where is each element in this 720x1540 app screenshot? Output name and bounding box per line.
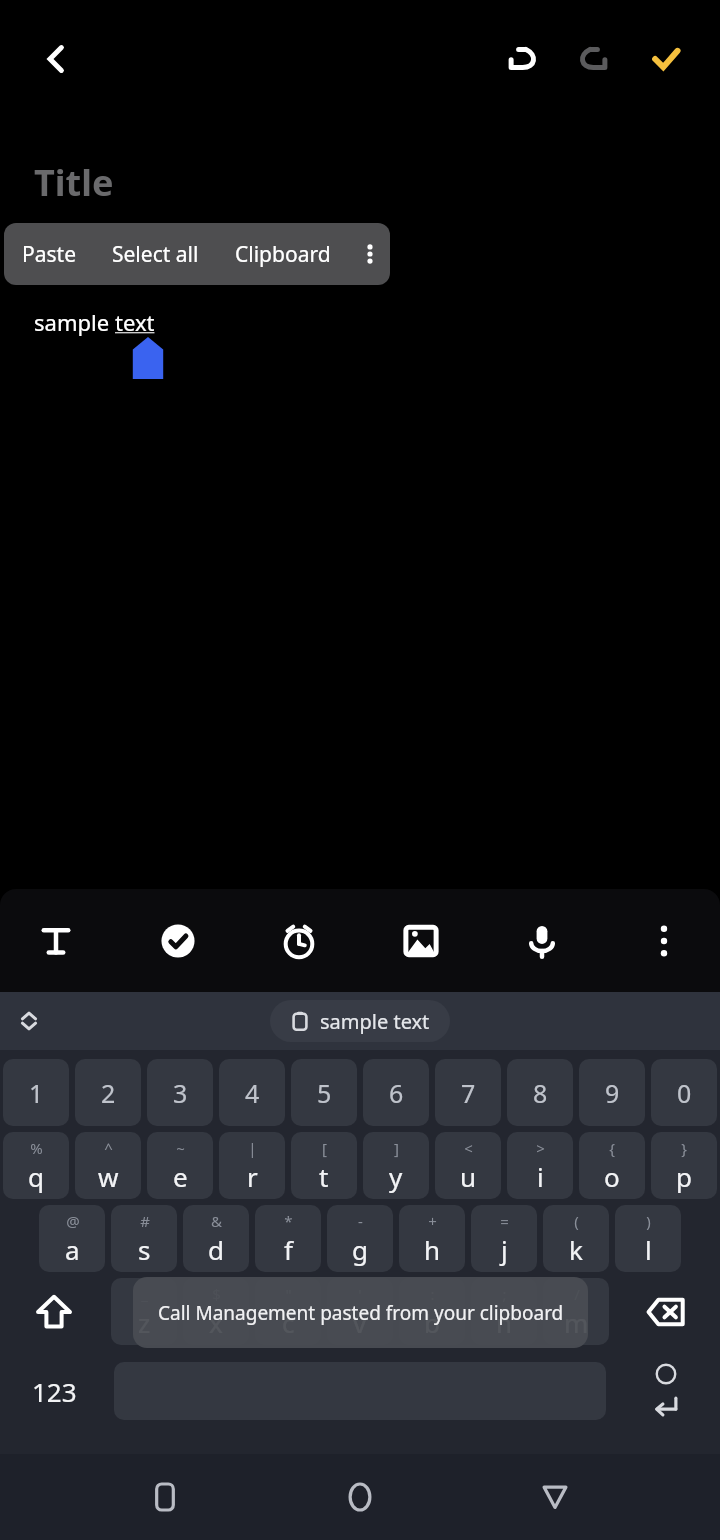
button[interactable]: 9 bbox=[579, 1059, 645, 1126]
button[interactable]: | bbox=[219, 1132, 285, 1199]
button[interactable]: 123 bbox=[0, 1348, 108, 1434]
staticText: q bbox=[28, 1159, 44, 1194]
button[interactable]: Clipboard bbox=[217, 223, 349, 285]
staticText: d bbox=[208, 1232, 224, 1267]
staticText: text bbox=[115, 307, 155, 337]
staticText: k bbox=[569, 1232, 583, 1267]
button[interactable]: 6 bbox=[363, 1059, 429, 1126]
button[interactable]: Voice input bbox=[510, 909, 574, 973]
button[interactable]: Recents bbox=[135, 1467, 195, 1527]
staticText: f bbox=[284, 1232, 293, 1267]
staticText: # bbox=[140, 1211, 150, 1231]
button[interactable]: ' bbox=[327, 1278, 393, 1345]
button[interactable]: " bbox=[255, 1278, 321, 1345]
staticText: ~ bbox=[176, 1138, 185, 1158]
button[interactable]: Enter bbox=[612, 1348, 720, 1434]
button[interactable]: _ bbox=[111, 1278, 177, 1345]
button[interactable]: Back bbox=[525, 1467, 585, 1527]
button[interactable]: Reminder bbox=[267, 909, 331, 973]
button[interactable]: Checklist bbox=[146, 909, 210, 973]
button[interactable]: 7 bbox=[435, 1059, 501, 1126]
button[interactable]: Undo bbox=[494, 31, 550, 87]
staticText: j bbox=[501, 1232, 508, 1267]
button[interactable]: Paste bbox=[4, 223, 94, 285]
button[interactable]: + bbox=[399, 1205, 465, 1272]
button[interactable]: Back bbox=[26, 29, 86, 89]
button[interactable]: sample text bbox=[270, 1000, 450, 1042]
button[interactable]: Backspace bbox=[612, 1275, 720, 1348]
button[interactable]: More bbox=[632, 909, 696, 973]
button[interactable]: Shift bbox=[0, 1275, 108, 1348]
staticText: g bbox=[352, 1232, 368, 1267]
button[interactable]: ] bbox=[363, 1132, 429, 1199]
button[interactable]: 1 bbox=[3, 1059, 69, 1126]
button[interactable]: ( bbox=[543, 1205, 609, 1272]
button[interactable]: ^ bbox=[75, 1132, 141, 1199]
button[interactable]: < bbox=[435, 1132, 501, 1199]
staticText: v bbox=[353, 1305, 367, 1340]
staticText: 123 bbox=[32, 1374, 77, 1409]
button[interactable]: $ bbox=[183, 1278, 249, 1345]
staticText: o bbox=[604, 1159, 620, 1194]
button[interactable]: 8 bbox=[507, 1059, 573, 1126]
button[interactable]: 3 bbox=[147, 1059, 213, 1126]
button[interactable]: Select all bbox=[94, 223, 217, 285]
button[interactable]: % bbox=[3, 1132, 69, 1199]
staticText: e bbox=[173, 1159, 188, 1194]
button[interactable]: / bbox=[543, 1278, 609, 1345]
button[interactable]: : bbox=[399, 1278, 465, 1345]
staticText: p bbox=[676, 1159, 692, 1194]
button[interactable]: [ bbox=[291, 1132, 357, 1199]
button[interactable]: Text format bbox=[24, 909, 88, 973]
button[interactable]: > bbox=[507, 1132, 573, 1199]
staticText: y bbox=[389, 1159, 403, 1194]
button[interactable]: = bbox=[471, 1205, 537, 1272]
staticText: Call Management pasted from your clipboa… bbox=[158, 1300, 564, 1326]
button[interactable]: { bbox=[579, 1132, 645, 1199]
staticText: 3 bbox=[173, 1076, 188, 1110]
staticText: 8 bbox=[533, 1076, 548, 1110]
staticText: < bbox=[464, 1138, 473, 1158]
button[interactable]: } bbox=[651, 1132, 717, 1199]
button[interactable]: @ bbox=[39, 1205, 105, 1272]
button[interactable]: - bbox=[327, 1205, 393, 1272]
button[interactable]: ) bbox=[615, 1205, 681, 1272]
button[interactable]: 4 bbox=[219, 1059, 285, 1126]
button[interactable]: Expand bbox=[8, 1000, 50, 1042]
staticText: a bbox=[65, 1232, 80, 1267]
staticText: 5 bbox=[317, 1076, 332, 1110]
staticText: Title bbox=[34, 158, 114, 207]
staticText: & bbox=[211, 1211, 222, 1231]
button[interactable]: * bbox=[255, 1205, 321, 1272]
button[interactable]: Insert image bbox=[389, 909, 453, 973]
staticText: r bbox=[247, 1159, 258, 1194]
staticText: } bbox=[681, 1138, 687, 1158]
staticText: ) bbox=[646, 1211, 651, 1231]
button[interactable]: Home bbox=[330, 1467, 390, 1527]
staticText: % bbox=[30, 1138, 43, 1158]
button[interactable]: ~ bbox=[147, 1132, 213, 1199]
staticText: > bbox=[536, 1138, 545, 1158]
button[interactable]: 0 bbox=[651, 1059, 717, 1126]
staticText: h bbox=[424, 1232, 441, 1267]
button[interactable]: & bbox=[183, 1205, 249, 1272]
staticText: + bbox=[428, 1211, 437, 1231]
button[interactable]: # bbox=[111, 1205, 177, 1272]
staticText: 6 bbox=[389, 1076, 404, 1110]
button[interactable]: Save bbox=[638, 31, 694, 87]
staticText: t bbox=[319, 1159, 329, 1194]
staticText: s bbox=[138, 1232, 151, 1267]
button[interactable]: 2 bbox=[75, 1059, 141, 1126]
button[interactable]: 5 bbox=[291, 1059, 357, 1126]
button[interactable]: Redo bbox=[566, 31, 622, 87]
button[interactable]: ; bbox=[471, 1278, 537, 1345]
button[interactable]: More options bbox=[349, 223, 390, 285]
staticText: [ bbox=[322, 1138, 327, 1158]
staticText: Select all bbox=[112, 240, 199, 269]
